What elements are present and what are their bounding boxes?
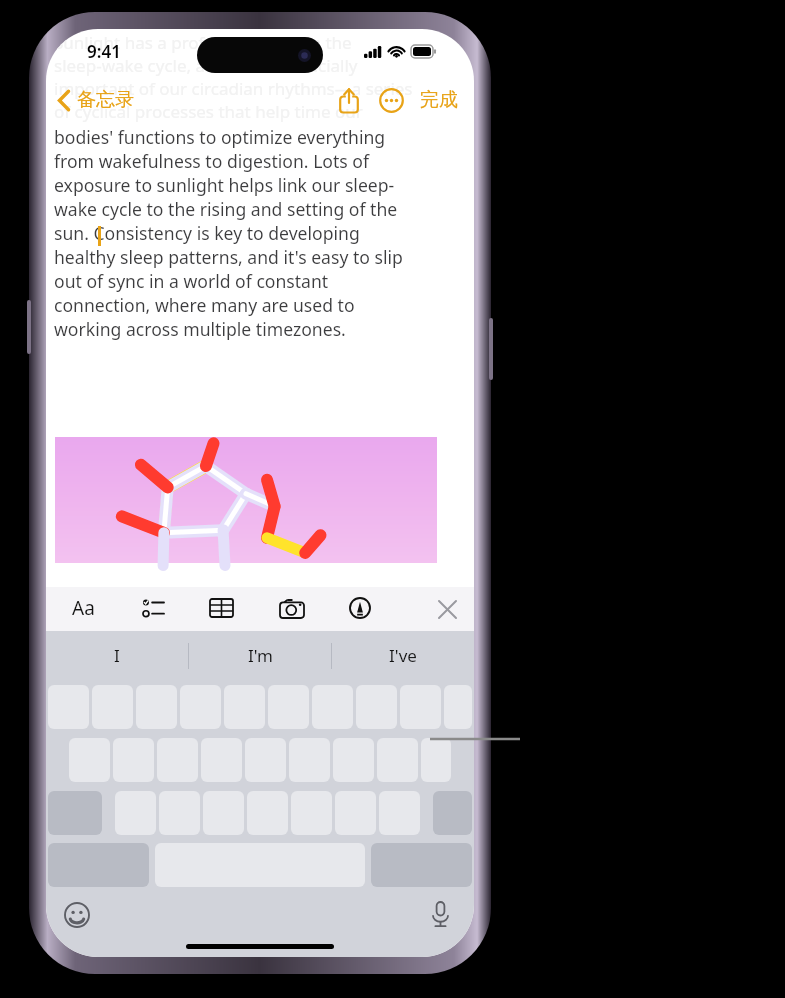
staticText: 9:41 (87, 40, 121, 63)
button[interactable]: More (370, 79, 412, 121)
staticText: Sunlight has a profound effect on the (54, 31, 352, 54)
button[interactable]: Table (200, 587, 242, 629)
button[interactable]: Camera (271, 587, 313, 629)
staticText: working across multiple timezones. (54, 317, 346, 341)
staticText: I've (389, 644, 417, 667)
button[interactable]: Checklist (132, 587, 174, 629)
button[interactable]: Backspace (433, 791, 472, 835)
staticText: sleep-wake cycle, and is most crucially (54, 54, 358, 77)
button[interactable]: I'm (189, 631, 331, 680)
staticText: sun. Consistency is key to developing (54, 221, 360, 245)
button[interactable]: Dictation (418, 893, 462, 937)
staticText: wake cycle to the rising and setting of … (54, 197, 398, 221)
staticText: healthy sleep patterns, and it's easy to… (54, 245, 403, 269)
button[interactable]: I (46, 631, 188, 680)
button[interactable]: Markup (339, 587, 381, 629)
staticText: of cyclical processes that help time our (54, 100, 363, 123)
staticText: I'm (248, 644, 273, 667)
staticText: important of our circadian rhythms—a ser… (54, 77, 413, 100)
button[interactable]: Format (62, 587, 104, 629)
staticText: connection, where many are used to (54, 293, 355, 317)
button[interactable]: 备忘录 (52, 84, 140, 116)
button[interactable]: I've (332, 631, 474, 680)
button[interactable]: Key (421, 738, 451, 782)
staticText: out of sync in a world of constant (54, 269, 329, 293)
staticText: Aa (72, 595, 95, 621)
staticText: exposure to sunlight helps link our slee… (54, 173, 395, 197)
staticText: 完成 (420, 88, 458, 112)
button[interactable]: Key (444, 685, 472, 729)
staticText: 备忘录 (77, 88, 134, 112)
staticText: from wakefulness to digestion. Lots of (54, 149, 370, 173)
button[interactable]: 完成 (412, 82, 466, 118)
staticText: I (114, 644, 120, 667)
staticText: bodies' functions to optimize everything (54, 125, 386, 149)
button[interactable]: Close keyboard (426, 588, 468, 630)
button[interactable]: Emoji (55, 893, 99, 937)
button[interactable]: Share (328, 79, 370, 121)
button[interactable] (55, 437, 437, 563)
